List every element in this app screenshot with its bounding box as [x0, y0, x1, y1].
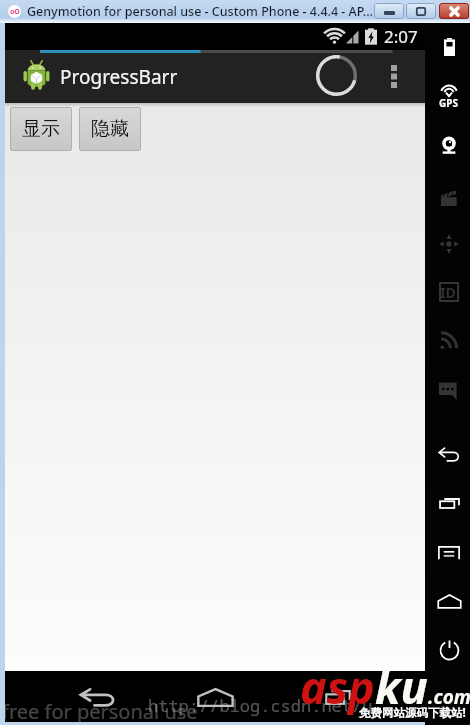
button[interactable]: Minimize [374, 3, 404, 19]
staticText: 2:07 [384, 25, 418, 48]
staticText: GPS [439, 96, 458, 110]
button[interactable]: Camera [432, 128, 466, 162]
button[interactable]: Home [180, 671, 250, 722]
staticText: ProgressBarr [60, 64, 178, 90]
button[interactable]: 隐藏 [79, 107, 141, 151]
button[interactable]: Network [432, 323, 466, 357]
button[interactable]: Video recorder [432, 181, 466, 215]
button[interactable]: 显示 [10, 107, 72, 151]
button[interactable]: Maximize [406, 3, 436, 19]
button[interactable]: Identifiers [432, 275, 466, 309]
staticText: 显示 [22, 117, 60, 141]
button[interactable]: Back [432, 437, 466, 471]
staticText: Genymotion for personal use - Custom Pho… [27, 3, 373, 20]
button[interactable]: Back [62, 671, 132, 722]
staticText: 免费网站源码下载站! [359, 705, 466, 721]
button[interactable]: Close [439, 3, 469, 19]
staticText: 隐藏 [91, 117, 129, 141]
button[interactable]: More options [374, 53, 414, 100]
staticText: ku [375, 656, 428, 717]
button[interactable]: Menu [432, 535, 466, 569]
staticText: free for personal use [2, 698, 198, 725]
button[interactable]: Recent apps [432, 486, 466, 520]
staticText: ID [440, 283, 456, 302]
button[interactable]: Rotate [432, 227, 466, 261]
button[interactable]: Power [432, 633, 466, 667]
staticText: oO [10, 7, 20, 17]
button[interactable]: Recent apps [303, 671, 373, 722]
staticText: .com [428, 684, 470, 710]
staticText: http://blog.csdn.net/u [148, 694, 373, 717]
button[interactable]: GPS [432, 78, 466, 112]
staticText: asp [300, 656, 375, 717]
button[interactable]: Home [432, 584, 466, 618]
button[interactable]: Battery [432, 30, 466, 64]
button[interactable]: SMS [432, 374, 466, 408]
